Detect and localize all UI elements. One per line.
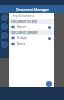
button[interactable]: Account: [1, 14, 8, 21]
button[interactable]: Account: [1, 23, 8, 30]
staticText: DOCUMENT FOLDER: [11, 20, 37, 24]
staticText: my documents: [13, 14, 34, 18]
staticText: Document Manager: [16, 7, 49, 12]
button[interactable]: Notes: [9, 41, 54, 47]
button[interactable]: my documents: [9, 13, 54, 19]
button[interactable]: Report: [9, 24, 54, 30]
staticText: Notes: [17, 42, 26, 46]
button[interactable]: Account: [1, 41, 8, 48]
staticText: DOCUMENT LIBRARY: [11, 31, 38, 35]
button[interactable]: Account: [1, 32, 8, 39]
button[interactable]: Add: [46, 81, 52, 87]
staticText: Report: [17, 25, 27, 29]
button[interactable]: Budget: [9, 35, 54, 41]
staticText: Budget: [17, 36, 28, 40]
